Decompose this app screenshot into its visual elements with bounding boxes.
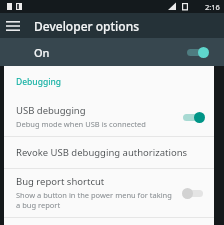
button[interactable]: Bug report shortcut	[4, 169, 214, 217]
staticText: Bug report shortcut	[16, 175, 105, 188]
staticText: USB debugging	[16, 104, 86, 117]
button[interactable]: On	[0, 38, 224, 66]
staticText: Developer options	[34, 18, 140, 34]
staticText: Show a button in the power menu for taki…	[16, 190, 176, 210]
staticText: Debugging	[16, 76, 62, 88]
button[interactable]: USB debugging	[4, 98, 214, 136]
staticText: Debug mode when USB is connected	[16, 119, 146, 129]
button[interactable]: Revoke USB debugging authorizations	[4, 137, 214, 168]
staticText: Revoke USB debugging authorizations	[16, 146, 188, 159]
staticText: 2:16	[205, 2, 220, 12]
staticText: On	[34, 45, 50, 60]
button[interactable]: Open navigation menu	[0, 13, 26, 38]
